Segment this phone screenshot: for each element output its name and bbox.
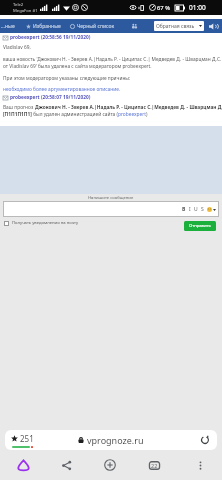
- staticText: Получать уведомления на почту: [12, 220, 79, 226]
- staticText: U: [194, 206, 198, 213]
- button[interactable]: Tabs: [143, 454, 165, 476]
- staticText: 67 %: [157, 4, 170, 12]
- staticText: vprognoze.ru: [87, 434, 144, 446]
- staticText: При этом модератором указаны следующие п…: [3, 75, 131, 82]
- button[interactable]: Черный список: [68, 23, 117, 30]
- staticText: Tele2: [13, 2, 24, 8]
- staticText: был удален администрацией сайта (: [32, 111, 118, 118]
- button[interactable]: Users: [131, 23, 138, 29]
- staticText: ): [146, 111, 148, 118]
- staticText: ...ные: [1, 23, 15, 30]
- button[interactable]: Reload: [200, 435, 210, 445]
- button[interactable]: vprognoze.ru: [78, 434, 144, 446]
- staticText: probeexpert: [118, 111, 146, 118]
- staticText: probeexpert (20:58:07 19/11/2020): [10, 94, 91, 101]
- button[interactable]: Sound: [209, 23, 218, 30]
- staticText: 22: [151, 462, 158, 469]
- button[interactable]: B: [3, 201, 219, 217]
- button[interactable]: Share: [55, 454, 77, 476]
- staticText: S: [201, 206, 204, 213]
- staticText: от Vladislav 69' была удалена с сайта мо…: [3, 63, 152, 70]
- button[interactable]: Отправить: [184, 221, 216, 231]
- staticText: ваша новость 'Джокович Н. - Зверев А.|На…: [3, 56, 222, 63]
- button[interactable]: Получать уведомления на почту: [4, 220, 79, 226]
- staticText: необходимо более аргументированное описа…: [3, 86, 121, 93]
- staticText: I: [189, 206, 191, 213]
- button[interactable]: Обратная связь: [154, 21, 204, 31]
- staticText: Джокович Н. - Зверев А.|Надаль Р. - Цици…: [35, 104, 222, 111]
- staticText: 251: [20, 433, 34, 444]
- button[interactable]: ...ные: [0, 23, 17, 30]
- staticText: Vladislav 69,: [3, 44, 31, 51]
- staticText: Ваш прогноз: [3, 104, 35, 111]
- staticText: 01:00: [189, 3, 206, 12]
- button[interactable]: Site rating 251: [11, 433, 34, 448]
- staticText: Отправить: [189, 223, 211, 229]
- staticText: B: [182, 206, 186, 213]
- staticText: Обратная связь: [156, 23, 195, 30]
- staticText: probeexpert (20:58:56 19/11/2020): [10, 34, 91, 41]
- staticText: Черный список: [77, 23, 115, 30]
- button[interactable]: Home: [12, 454, 34, 476]
- staticText: MegaFon #1: [13, 8, 38, 14]
- staticText: Избранные: [33, 23, 61, 30]
- staticText: [П1П1П1П1]: [3, 111, 32, 118]
- staticText: Напишите сообщение: [88, 195, 134, 201]
- button[interactable]: New tab: [99, 454, 121, 476]
- button[interactable]: Избранные: [24, 23, 63, 30]
- button[interactable]: Menu: [189, 454, 211, 476]
